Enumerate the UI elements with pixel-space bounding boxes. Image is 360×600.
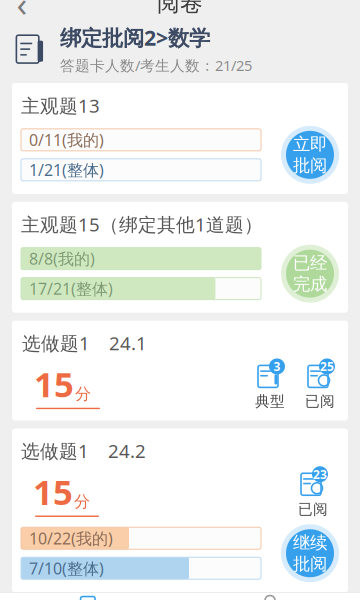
staticText: 10/22(我的) [29,528,113,549]
staticText: 批阅 [293,155,327,176]
staticText: 分 [74,492,90,512]
staticText: 选做题1 24.2 [21,438,146,463]
staticText: 已经 [293,252,327,274]
staticText: 23 [313,466,327,482]
staticText: 7/10(整体) [29,558,104,579]
staticText: 立即 [293,134,327,155]
button[interactable]: 阅卷 [0,593,180,600]
button[interactable]: 23 [295,467,331,518]
staticText: 选做题1 24.1 [22,331,147,355]
staticText: 主观题15（绑定其他1道题） [21,212,263,237]
staticText: 典型 [255,392,285,410]
staticText: 3 [273,358,280,374]
staticText: 17/21(整体) [29,278,113,299]
staticText: 已阅 [305,392,335,410]
button[interactable]: 我 [180,593,360,600]
staticText: 阅卷 [157,0,203,17]
button[interactable]: 3 [252,359,288,410]
staticText: 主观题13 [21,93,100,118]
staticText: 25 [320,358,334,374]
button[interactable]: 继续 [281,524,339,582]
staticText: 0/11(我的) [29,129,104,150]
staticText: 1/21(整体) [29,159,104,180]
button[interactable]: 25 [302,359,338,410]
staticText: 已阅 [298,500,328,518]
button[interactable]: 立即 [281,126,339,184]
staticText: 15 [33,468,73,514]
staticText: 绑定批阅2>数学 [60,23,210,52]
staticText: 完成 [293,274,327,295]
staticText: 15 [34,361,74,407]
staticText: 分 [75,384,91,404]
staticText: 继续 [293,532,327,553]
staticText: 批阅 [293,553,327,574]
staticText: ‹ [16,0,27,26]
button[interactable]: 已经 [281,245,339,303]
staticText: 8/8(我的) [29,248,95,269]
button[interactable]: Back [0,0,44,23]
staticText: 答题卡人数/考生人数：21/25 [60,56,252,75]
